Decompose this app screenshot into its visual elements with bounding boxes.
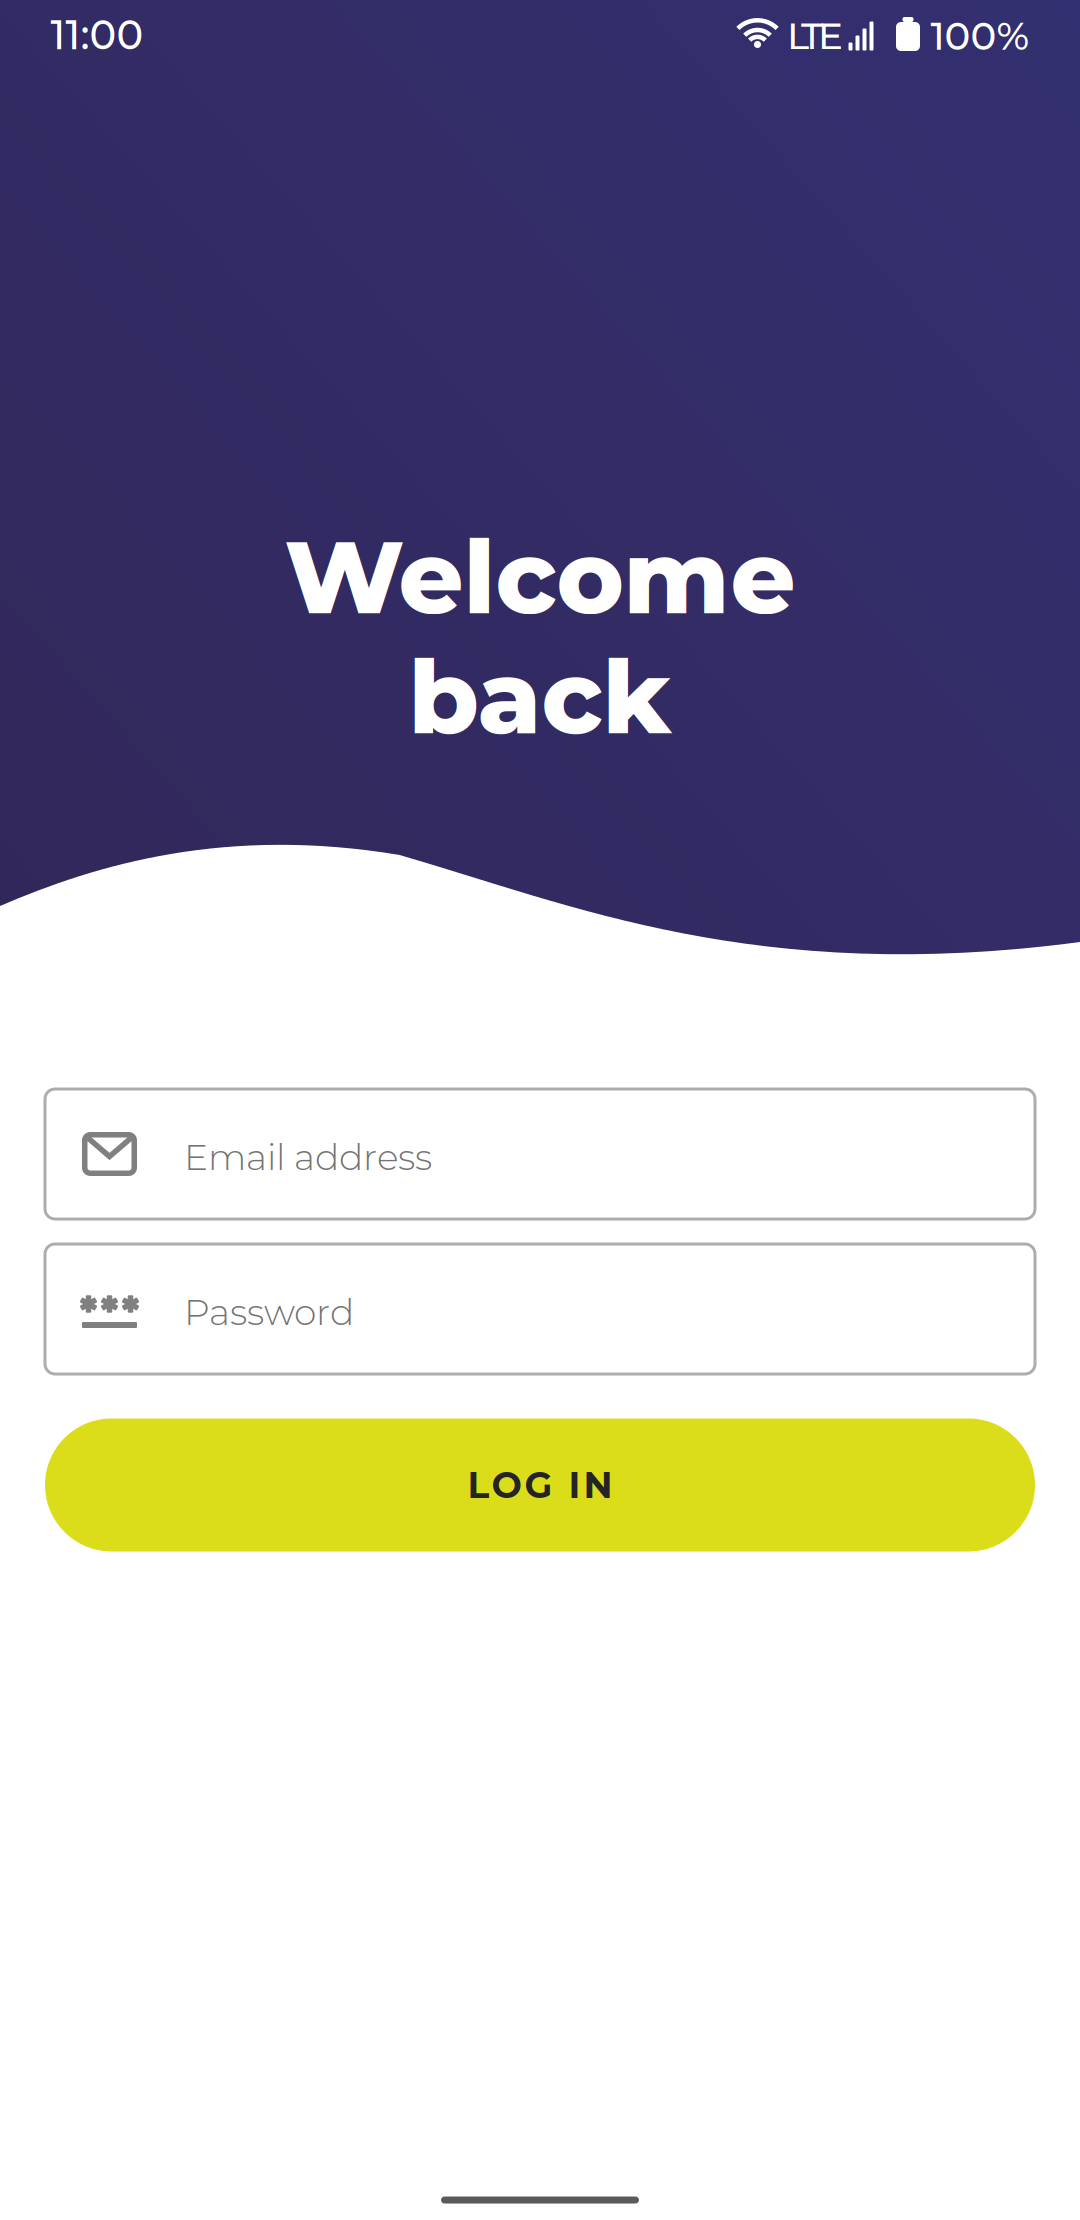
- staticText: 11:00: [50, 11, 143, 59]
- button[interactable]: Password: [45, 1244, 1035, 1374]
- staticText: LTE: [787, 13, 843, 59]
- staticText: Password: [184, 1290, 354, 1334]
- button[interactable]: LOG IN: [45, 1418, 1035, 1551]
- button[interactable]: Email address: [45, 1089, 1035, 1219]
- staticText: back: [408, 635, 671, 759]
- staticText: 100%: [930, 12, 1029, 59]
- staticText: Welcome: [284, 515, 795, 639]
- staticText: LOG IN: [467, 1463, 612, 1507]
- staticText: Email address: [184, 1135, 432, 1179]
